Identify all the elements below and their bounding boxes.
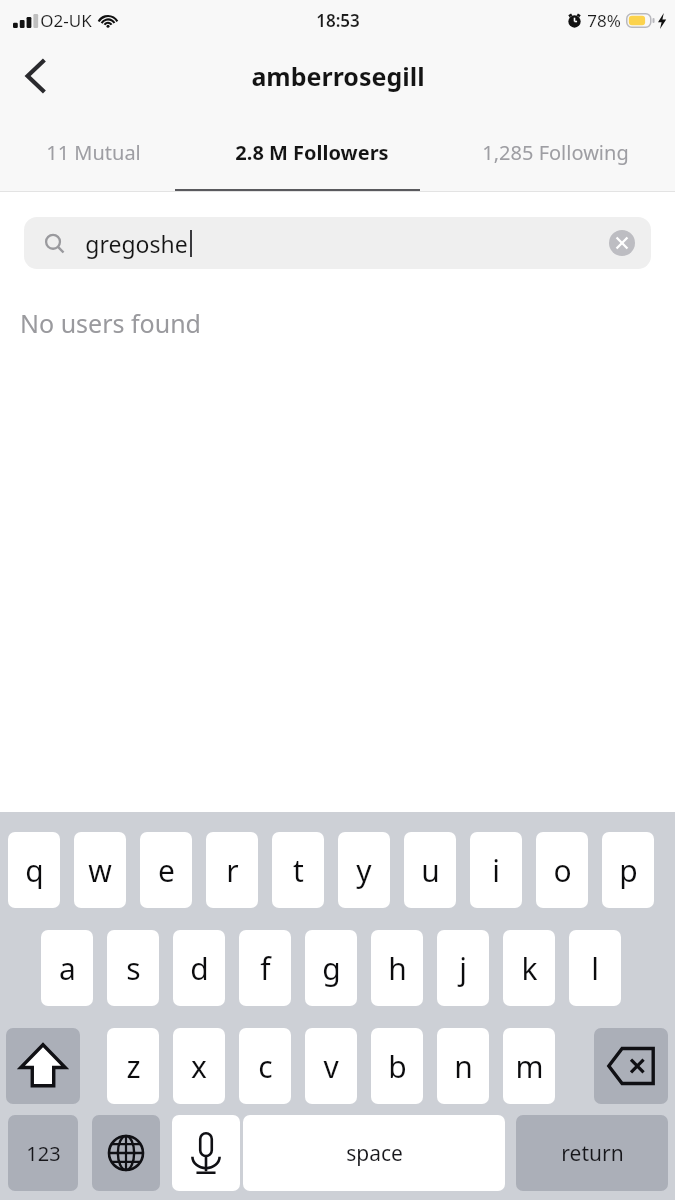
staticText: a	[59, 948, 76, 989]
button[interactable]: v	[305, 1028, 357, 1104]
staticText: m	[515, 1046, 544, 1087]
staticText: space	[346, 1139, 403, 1168]
button[interactable]: i	[470, 832, 522, 908]
button[interactable]: n	[437, 1028, 489, 1104]
button[interactable]: 1,285 Following	[436, 112, 675, 192]
button[interactable]: o	[536, 832, 588, 908]
staticText: 1,285 Following	[482, 139, 629, 166]
staticText: b	[388, 1046, 407, 1087]
staticText: z	[126, 1046, 141, 1087]
button[interactable]: Dictate	[172, 1115, 240, 1191]
staticText: s	[126, 948, 141, 989]
button[interactable]: gregoshe	[24, 217, 651, 269]
button[interactable]: 11 Mutual	[0, 112, 187, 192]
button[interactable]: Switch keyboard	[92, 1115, 160, 1191]
staticText: 78%	[587, 9, 621, 32]
button[interactable]: t	[272, 832, 324, 908]
staticText: d	[190, 948, 209, 989]
button[interactable]: j	[437, 930, 489, 1006]
staticText: j	[459, 948, 467, 989]
button[interactable]: return	[516, 1115, 668, 1191]
staticText: g	[322, 948, 341, 989]
staticText: w	[88, 850, 112, 891]
staticText: n	[454, 1046, 473, 1087]
button[interactable]: h	[371, 930, 423, 1006]
button[interactable]: s	[107, 930, 159, 1006]
button[interactable]: m	[503, 1028, 555, 1104]
button[interactable]: Back	[8, 48, 64, 104]
button[interactable]: b	[371, 1028, 423, 1104]
staticText: o	[553, 850, 572, 891]
button[interactable]: y	[338, 832, 390, 908]
button[interactable]: u	[404, 832, 456, 908]
staticText: O2-UK	[40, 9, 92, 32]
staticText: v	[323, 1046, 339, 1087]
staticText: h	[388, 948, 407, 989]
button[interactable]: g	[305, 930, 357, 1006]
staticText: x	[191, 1046, 207, 1087]
staticText: 2.8 M Followers	[235, 139, 389, 166]
button[interactable]: r	[206, 832, 258, 908]
button[interactable]: q	[8, 832, 60, 908]
button[interactable]: e	[140, 832, 192, 908]
staticText: c	[258, 1046, 273, 1087]
staticText: r	[226, 850, 239, 891]
staticText: k	[521, 948, 538, 989]
button[interactable]: l	[569, 930, 621, 1006]
button[interactable]: z	[107, 1028, 159, 1104]
button[interactable]: 123	[8, 1115, 78, 1191]
button[interactable]: x	[173, 1028, 225, 1104]
staticText: No users found	[20, 306, 201, 340]
staticText: return	[561, 1139, 624, 1168]
staticText: u	[421, 850, 440, 891]
staticText: gregoshe	[85, 228, 188, 259]
staticText: p	[619, 850, 638, 891]
staticText: t	[293, 850, 304, 891]
button[interactable]: d	[173, 930, 225, 1006]
button[interactable]: p	[602, 832, 654, 908]
button[interactable]: Shift	[6, 1028, 80, 1104]
staticText: 11 Mutual	[46, 139, 141, 166]
staticText: l	[591, 948, 599, 989]
staticText: e	[158, 850, 175, 891]
button[interactable]: Clear search	[607, 228, 637, 258]
button[interactable]: a	[41, 930, 93, 1006]
staticText: 123	[26, 1140, 61, 1167]
staticText: q	[25, 850, 44, 891]
button[interactable]: f	[239, 930, 291, 1006]
button[interactable]: Backspace	[594, 1028, 668, 1104]
button[interactable]: k	[503, 930, 555, 1006]
staticText: f	[260, 948, 271, 989]
staticText: y	[356, 850, 372, 891]
button[interactable]: space	[243, 1115, 505, 1191]
button[interactable]: c	[239, 1028, 291, 1104]
button[interactable]: w	[74, 832, 126, 908]
staticText: i	[492, 850, 500, 891]
button[interactable]: 2.8 M Followers	[187, 112, 436, 192]
staticText: amberrosegill	[251, 59, 425, 93]
staticText: 18:53	[316, 9, 360, 32]
